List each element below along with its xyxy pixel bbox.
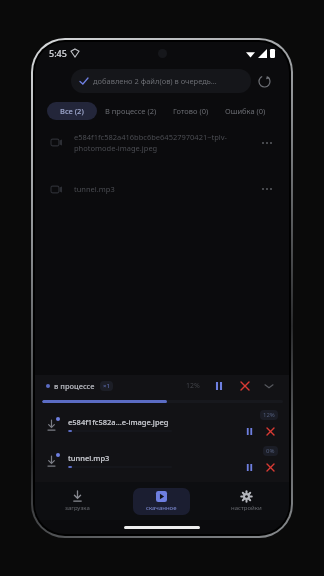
button[interactable]: More options xyxy=(257,179,277,199)
staticText: e584f1fc582a416bbc6be64527970421~tplv-ph… xyxy=(74,132,251,153)
button[interactable]: Cancel xyxy=(262,459,278,475)
button[interactable]: Cancel all xyxy=(236,377,254,395)
staticText: ×1 xyxy=(103,382,110,390)
button[interactable]: e584f1fc582a…e-image.jpeg xyxy=(35,406,289,442)
staticText: загрузка xyxy=(65,504,90,512)
button[interactable]: Все (2) xyxy=(47,102,97,120)
button[interactable]: скачанное xyxy=(119,482,204,520)
button[interactable]: More options xyxy=(257,133,277,153)
staticText: 12% xyxy=(186,381,200,391)
staticText: tunnel.mp3 xyxy=(74,184,251,194)
button[interactable]: В процессе (2) xyxy=(97,102,165,120)
button[interactable]: e584f1fc582a416bbc6be64527970421~tplv-ph… xyxy=(35,128,289,157)
button[interactable]: Pause xyxy=(241,423,257,439)
staticText: скачанное xyxy=(146,504,177,512)
button[interactable]: Collapse xyxy=(260,377,278,395)
staticText: 12% xyxy=(263,411,275,419)
button[interactable]: Готово (0) xyxy=(165,102,217,120)
staticText: tunnel.mp3 xyxy=(68,453,110,463)
button[interactable]: Pause all xyxy=(210,377,228,395)
button[interactable]: Pause xyxy=(241,459,257,475)
button[interactable]: настройки xyxy=(204,482,289,520)
button[interactable]: добавлено 2 файл(ов) в очередь… xyxy=(71,69,251,93)
button[interactable]: tunnel.mp3 xyxy=(35,175,289,203)
button[interactable]: tunnel.mp3 xyxy=(35,442,289,478)
staticText: e584f1fc582a…e-image.jpeg xyxy=(68,417,169,427)
staticText: В процессе (2) xyxy=(105,106,157,116)
staticText: настройки xyxy=(231,504,262,512)
staticText: 0% xyxy=(266,447,275,455)
button[interactable]: в процессе xyxy=(35,375,289,397)
button[interactable]: Refresh xyxy=(251,68,277,94)
staticText: Все (2) xyxy=(60,106,84,116)
staticText: 5:45 xyxy=(49,47,67,59)
button[interactable]: Cancel xyxy=(262,423,278,439)
button[interactable]: загрузка xyxy=(35,482,119,520)
staticText: в процессе xyxy=(54,381,95,391)
staticText: Готово (0) xyxy=(173,106,209,116)
staticText: добавлено 2 файл(ов) в очередь… xyxy=(93,76,217,86)
button[interactable]: Ошибка (0) xyxy=(217,102,274,120)
staticText: Ошибка (0) xyxy=(225,106,266,116)
